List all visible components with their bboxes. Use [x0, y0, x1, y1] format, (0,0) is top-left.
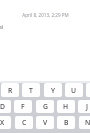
staticText: N	[85, 118, 90, 127]
button[interactable]: B	[57, 116, 75, 129]
button[interactable]: G	[36, 100, 54, 113]
staticText: April 8, 2013, 2:29 PM	[22, 12, 69, 18]
button[interactable]: F	[14, 100, 32, 113]
button[interactable]: C	[15, 116, 33, 129]
staticText: al	[0, 24, 4, 31]
staticText: V	[43, 118, 48, 127]
staticText: D	[0, 102, 5, 111]
button[interactable]: I	[86, 83, 90, 97]
button[interactable]: U	[65, 83, 83, 97]
staticText: H	[63, 102, 69, 111]
button[interactable]: V	[36, 116, 54, 129]
button[interactable]: T	[22, 83, 40, 97]
button[interactable]: N	[79, 116, 90, 129]
button[interactable]: R	[1, 83, 19, 97]
button[interactable]: Y	[44, 83, 62, 97]
staticText: B	[64, 118, 69, 127]
button[interactable]: D	[0, 100, 11, 113]
staticText: F	[21, 102, 25, 111]
button[interactable]: J	[78, 100, 90, 113]
staticText: J	[86, 102, 88, 111]
staticText: U	[71, 86, 77, 95]
staticText: R	[8, 86, 13, 95]
staticText: C	[22, 118, 27, 127]
staticText: Y	[51, 86, 55, 95]
staticText: T	[29, 86, 33, 95]
staticText: G	[43, 102, 48, 111]
button[interactable]: X	[0, 116, 11, 129]
staticText: X	[0, 118, 5, 127]
button[interactable]: H	[57, 100, 75, 113]
